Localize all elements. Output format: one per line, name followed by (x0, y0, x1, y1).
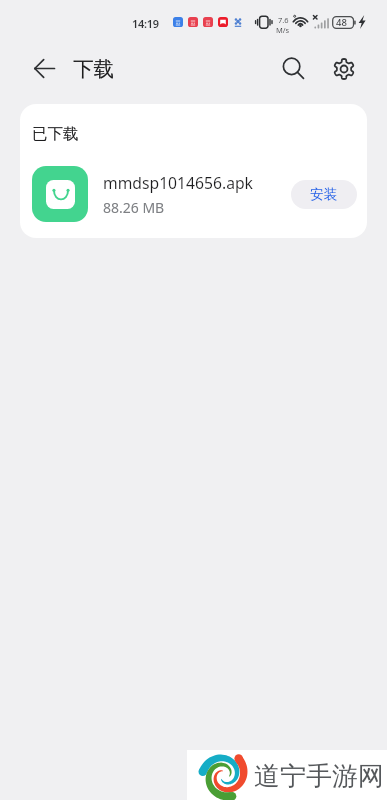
staticText: 88.26 MB (103, 198, 165, 217)
button[interactable]: Settings (327, 52, 360, 85)
staticText: 安装 (310, 186, 338, 203)
staticText: 道宁手游网 (254, 760, 384, 793)
staticText: mmdsp1014656.apk (103, 172, 253, 193)
staticText: M/s (276, 25, 290, 35)
button[interactable]: Search (277, 52, 310, 85)
staticText: 48 (336, 16, 347, 29)
staticText: 下载 (73, 56, 114, 82)
button[interactable]: 安装 (291, 180, 357, 209)
staticText: 下载 (73, 56, 114, 82)
staticText: 14:19 (132, 16, 159, 31)
staticText: 7.6 (278, 15, 289, 25)
button[interactable]: mmdsp1014656.apk (20, 164, 367, 224)
staticText: 已下载 (32, 124, 79, 144)
button[interactable]: Back (28, 52, 60, 84)
staticText: 已下载 (32, 124, 79, 144)
